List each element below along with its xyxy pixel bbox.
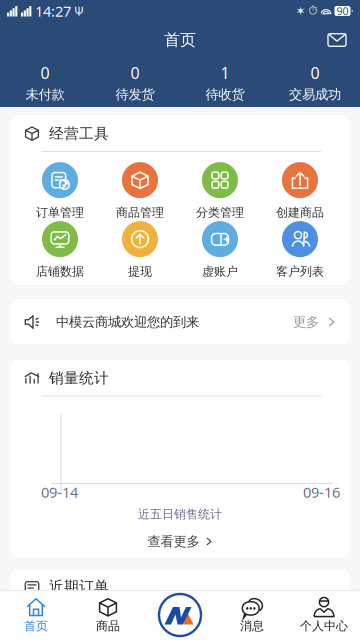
staticText: 店铺数据 [36, 264, 84, 279]
button[interactable]: 分类管理 [180, 162, 260, 220]
staticText: 首页 [164, 30, 196, 50]
staticText: 90 [336, 4, 348, 18]
staticText: 消息 [240, 619, 264, 633]
button[interactable]: 1 [180, 58, 270, 107]
staticText: 近期订单 [49, 577, 109, 595]
button[interactable]: 商品 [72, 590, 144, 640]
staticText: 待收货 [205, 86, 244, 103]
staticText: 查看更多 [147, 533, 199, 550]
staticText: 虚账户 [202, 264, 238, 279]
button[interactable]: 首页 [0, 590, 72, 640]
staticText: 经营工具 [49, 124, 109, 142]
staticText: 09-14 [41, 482, 78, 502]
button[interactable]: 商品管理 [100, 162, 180, 220]
button[interactable]: 0 [0, 58, 90, 107]
staticText: 更多 [293, 314, 319, 330]
button[interactable]: 客户列表 [260, 221, 340, 279]
staticText: 首页 [24, 619, 48, 633]
staticText: 未付款 [25, 86, 64, 103]
staticText: 中模云商城欢迎您的到来 [56, 314, 199, 330]
button[interactable]: 店铺数据 [20, 221, 100, 279]
staticText: 商品 [96, 619, 120, 633]
staticText: 1 [220, 62, 229, 83]
button[interactable]: 0 [270, 58, 360, 107]
staticText: 订单管理 [36, 205, 84, 220]
staticText: 客户列表 [276, 264, 324, 279]
staticText: 创建商品 [276, 205, 324, 220]
staticText: 09-16 [303, 482, 340, 502]
staticText: 0 [40, 62, 49, 83]
staticText: 待发货 [115, 86, 154, 103]
staticText: 分类管理 [196, 205, 244, 220]
button[interactable]: 订单管理 [20, 162, 100, 220]
button[interactable]: 消息 [216, 590, 288, 640]
staticText: 0 [130, 62, 139, 83]
staticText: 商品管理 [116, 205, 164, 220]
button[interactable]: 中模云商城欢迎您的到来 [10, 300, 350, 344]
staticText: 近五日销售统计 [138, 507, 222, 521]
staticText: 交易成功 [289, 86, 341, 103]
button[interactable]: 虚账户 [180, 221, 260, 279]
staticText: 14:27 [35, 1, 71, 21]
button[interactable]: 创建商品 [260, 162, 340, 220]
button[interactable]: 中模云商城 [157, 592, 203, 638]
staticText: 提现 [128, 264, 152, 279]
button[interactable]: 个人中心 [288, 590, 360, 640]
button[interactable]: 0 [90, 58, 180, 107]
staticText: Ψ [74, 3, 84, 19]
staticText: 0 [310, 62, 319, 83]
button[interactable]: 消息 [320, 25, 354, 55]
button[interactable]: 查看更多 [10, 526, 350, 556]
button[interactable]: 提现 [100, 221, 180, 279]
staticText: ⏱ [308, 5, 317, 17]
staticText: ✶ [295, 4, 305, 18]
staticText: 个人中心 [300, 619, 348, 633]
staticText: 销量统计 [49, 369, 109, 387]
